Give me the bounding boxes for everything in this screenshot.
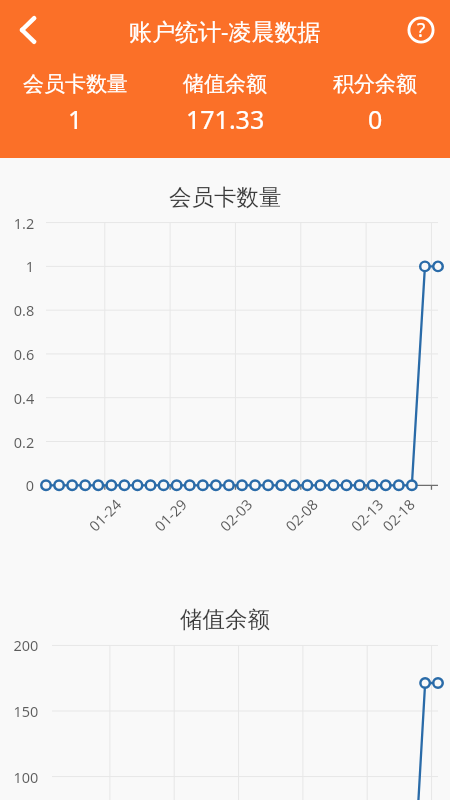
- button[interactable]: Back: [0, 3, 54, 57]
- button[interactable]: 会员卡数量: [0, 60, 150, 136]
- staticText: 171.33: [186, 102, 265, 136]
- staticText: 1: [68, 102, 83, 136]
- staticText: 储值余额: [183, 71, 267, 97]
- staticText: ?: [417, 17, 426, 43]
- button[interactable]: 储值余额: [150, 60, 300, 136]
- staticText: 0: [368, 102, 383, 136]
- staticText: 会员卡数量: [169, 183, 282, 211]
- button[interactable]: Help: [392, 1, 450, 59]
- staticText: 积分余额: [333, 71, 417, 97]
- button[interactable]: 积分余额: [300, 60, 450, 136]
- staticText: 会员卡数量: [23, 71, 128, 97]
- staticText: 账户统计-凌晨数据: [129, 15, 321, 46]
- staticText: 储值余额: [180, 605, 270, 633]
